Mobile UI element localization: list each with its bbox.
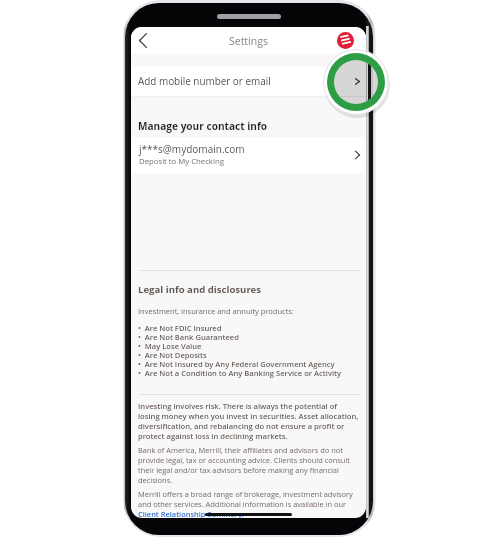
staticText: Investment, insurance and annuity produc…	[138, 306, 294, 316]
button[interactable]: Add mobile number or email	[323, 49, 389, 115]
button[interactable]: j***s@mydomain.com	[131, 137, 366, 173]
staticText: Legal info and disclosures	[138, 283, 262, 296]
staticText: Add mobile number or email	[138, 74, 271, 87]
staticText: j***s@mydomain.com	[139, 142, 245, 156]
staticText: • Are Not FDIC Insured • Are Not Bank Gu…	[138, 323, 342, 378]
button[interactable]: Bank of America menu	[335, 30, 355, 50]
staticText: Client Relationship Summary.	[138, 509, 244, 518]
staticText: Bank of America, Merrill, their affiliat…	[138, 445, 360, 485]
staticText: Investing involves risk. There is always…	[138, 401, 360, 441]
staticText: Settings	[229, 34, 268, 48]
staticText: Deposit to My Checking	[139, 156, 224, 167]
button[interactable]: Back	[131, 27, 156, 53]
staticText: Manage your contact info	[138, 119, 268, 133]
button[interactable]: Add mobile number or email	[131, 67, 366, 96]
staticText: Merrill offers a broad range of brokerag…	[138, 489, 360, 509]
